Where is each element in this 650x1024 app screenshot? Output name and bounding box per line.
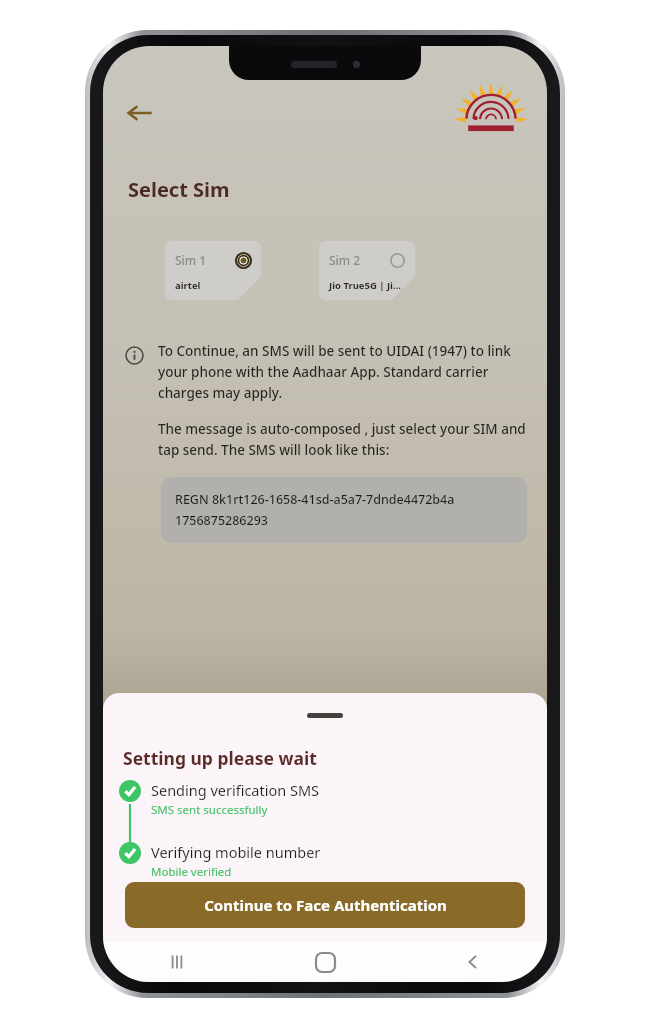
staticText: airtel bbox=[175, 279, 201, 292]
staticText: Verifying mobile number bbox=[151, 842, 321, 862]
button[interactable]: Home bbox=[251, 942, 399, 982]
staticText: To Continue, an SMS will be sent to UIDA… bbox=[158, 342, 527, 402]
button[interactable]: Continue to Face Authentication bbox=[125, 882, 525, 928]
other: Aadhaar logo bbox=[453, 86, 529, 140]
staticText: SMS sent successfully bbox=[151, 802, 268, 818]
staticText: Jio True5G | Ji... bbox=[329, 279, 401, 292]
button[interactable]: Recent apps bbox=[103, 942, 251, 982]
staticText: The message is auto-composed , just sele… bbox=[158, 420, 527, 459]
button[interactable]: Sim 2 bbox=[319, 241, 415, 300]
staticText: Mobile verified bbox=[151, 864, 232, 880]
staticText: REGN 8k1rt126-1658-41sd-a5a7-7dnde4472b4… bbox=[175, 491, 513, 529]
staticText: Setting up please wait bbox=[123, 746, 317, 770]
staticText: Continue to Face Authentication bbox=[204, 895, 447, 915]
staticText: Sending verification SMS bbox=[151, 780, 320, 800]
staticText: Sim 1 bbox=[175, 252, 207, 268]
staticText: Select Sim bbox=[128, 176, 230, 203]
button[interactable]: Sim 1 bbox=[165, 241, 261, 300]
staticText: Sim 2 bbox=[329, 252, 361, 268]
button[interactable]: Back bbox=[399, 942, 547, 982]
button[interactable]: Back bbox=[117, 90, 163, 136]
